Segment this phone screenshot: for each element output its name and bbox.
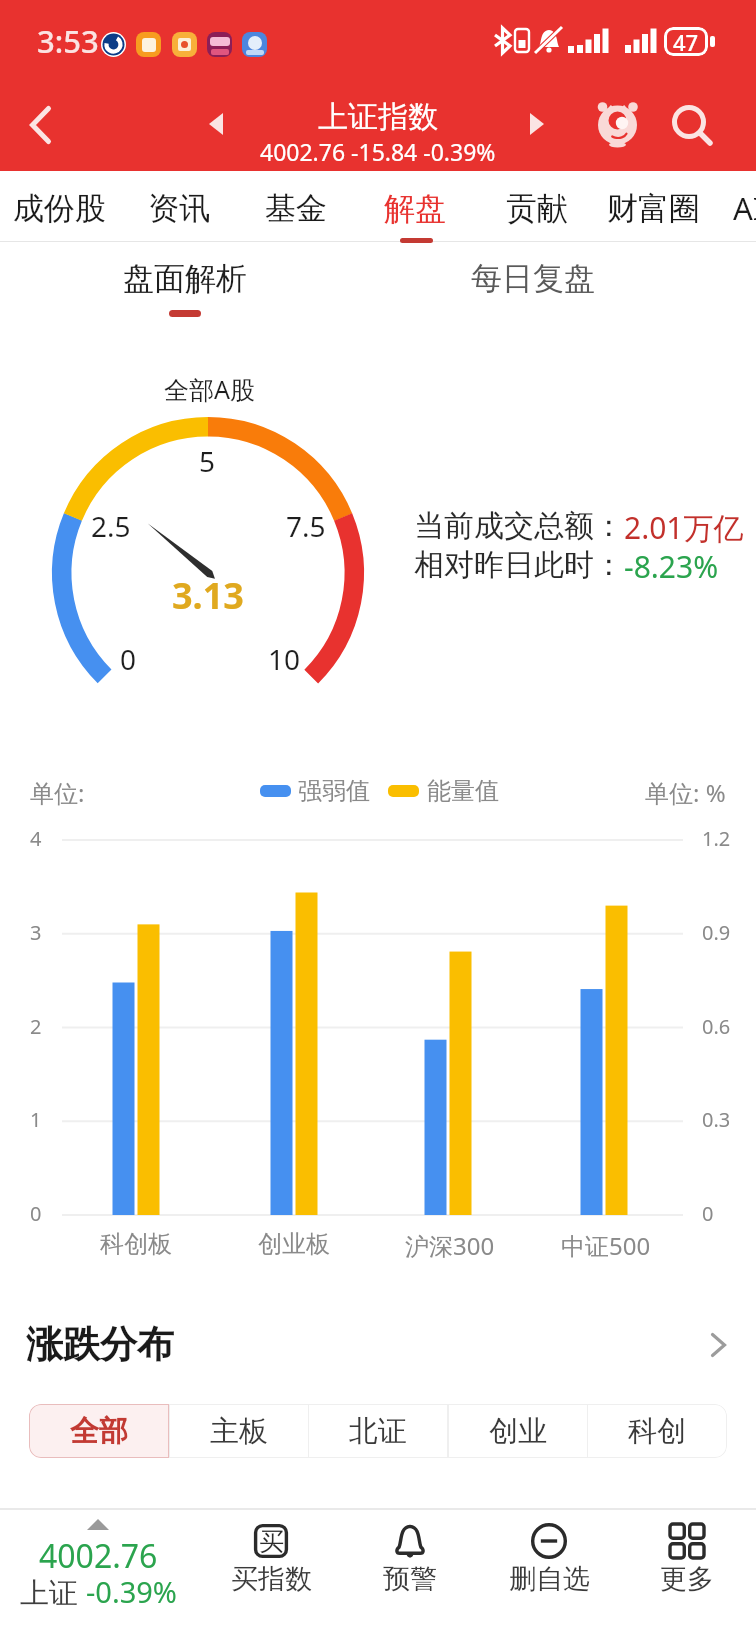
button[interactable]: 北证 [308, 1404, 448, 1458]
staticText: 单位: [30, 776, 85, 809]
staticText: 0.9 [702, 919, 731, 946]
staticText: 资讯 [148, 189, 210, 228]
staticText: 2 [30, 1013, 42, 1040]
staticText: 10 [268, 640, 301, 678]
staticText: 1.2 [702, 825, 731, 852]
staticText: 上证指数 [318, 98, 438, 136]
staticText: 0 [702, 1200, 714, 1227]
button[interactable]: 盘面解析 [95, 243, 275, 333]
button[interactable]: 创业 [448, 1404, 588, 1458]
staticText: -0.39% [86, 1572, 177, 1611]
staticText: 0 [120, 640, 137, 678]
staticText: 能量值 [427, 776, 499, 806]
staticText: 3 [30, 919, 42, 946]
staticText: 3:53 [37, 20, 99, 62]
staticText: 每日复盘 [471, 259, 595, 298]
staticText: 3.13 [172, 571, 244, 620]
button[interactable]: 涨跌分布 [0, 1295, 756, 1387]
staticText: 47 [673, 27, 699, 56]
staticText: 买 [259, 1526, 284, 1557]
staticText: 5 [199, 442, 216, 480]
button[interactable]: 更多 [618, 1508, 756, 1632]
staticText: 单位: % [645, 776, 726, 809]
staticText: 强弱值 [298, 776, 370, 806]
staticText: 0 [30, 1200, 42, 1227]
button[interactable]: Assistant [588, 92, 648, 152]
button[interactable]: 买指数 [202, 1508, 340, 1632]
button[interactable]: 删自选 [480, 1508, 618, 1632]
staticText: 当前成交总额： [414, 507, 624, 545]
staticText: 盘面解析 [123, 259, 247, 298]
staticText: 创业 [489, 1413, 547, 1450]
staticText: 主板 [210, 1413, 268, 1450]
staticText: 科创板 [100, 1229, 172, 1259]
button[interactable]: AI [689, 172, 756, 244]
staticText: 预警 [383, 1562, 437, 1596]
staticText: 更多 [660, 1562, 714, 1596]
staticText: 中证500 [561, 1229, 651, 1262]
staticText: 创业板 [258, 1229, 330, 1259]
button[interactable]: Back [8, 84, 756, 171]
staticText: 全部A股 [164, 372, 255, 406]
staticText: 上证 [20, 1572, 86, 1612]
button[interactable]: 科创 [587, 1404, 727, 1458]
button[interactable]: 资讯 [120, 172, 238, 244]
button[interactable]: 解盘 [356, 172, 474, 244]
staticText: 买指数 [231, 1562, 312, 1596]
button[interactable]: 财富圈 [594, 172, 712, 244]
staticText: 4 [30, 825, 42, 852]
staticText: 贡献 [506, 189, 568, 228]
staticText: 沪深300 [405, 1229, 495, 1262]
button[interactable]: 贡献 [478, 172, 596, 244]
button[interactable]: 每日复盘 [443, 243, 623, 333]
staticText: 4002.76 [39, 1534, 158, 1578]
button[interactable]: 主板 [169, 1404, 309, 1458]
staticText: -8.23% [624, 546, 719, 587]
staticText: 相对昨日此时： [414, 546, 624, 584]
staticText: 0.6 [702, 1013, 731, 1040]
staticText: 成份股 [13, 189, 106, 228]
staticText: 北证 [349, 1413, 407, 1450]
staticText: 2.5 [91, 507, 131, 545]
staticText: 删自选 [509, 1562, 590, 1596]
staticText: 全部 [70, 1413, 128, 1450]
staticText: 7.5 [286, 507, 326, 545]
button[interactable]: 全部 [29, 1404, 169, 1458]
staticText: 科创 [628, 1413, 686, 1450]
staticText: 涨跌分布 [26, 1321, 174, 1368]
button[interactable]: Search [663, 88, 715, 140]
staticText: 基金 [265, 189, 327, 228]
staticText: 2.01万亿 [624, 507, 744, 548]
staticText: 1 [30, 1106, 42, 1133]
button[interactable]: 4002.76 [0, 1508, 200, 1632]
button[interactable]: 成份股 [0, 172, 118, 244]
staticText: 4002.76 -15.84 -0.39% [260, 136, 496, 167]
staticText: 0.3 [702, 1106, 731, 1133]
button[interactable]: 基金 [237, 172, 355, 244]
button[interactable]: 预警 [341, 1508, 479, 1632]
staticText: AI [733, 187, 756, 229]
staticText: 解盘 [384, 189, 446, 228]
staticText: 财富圈 [607, 189, 700, 228]
